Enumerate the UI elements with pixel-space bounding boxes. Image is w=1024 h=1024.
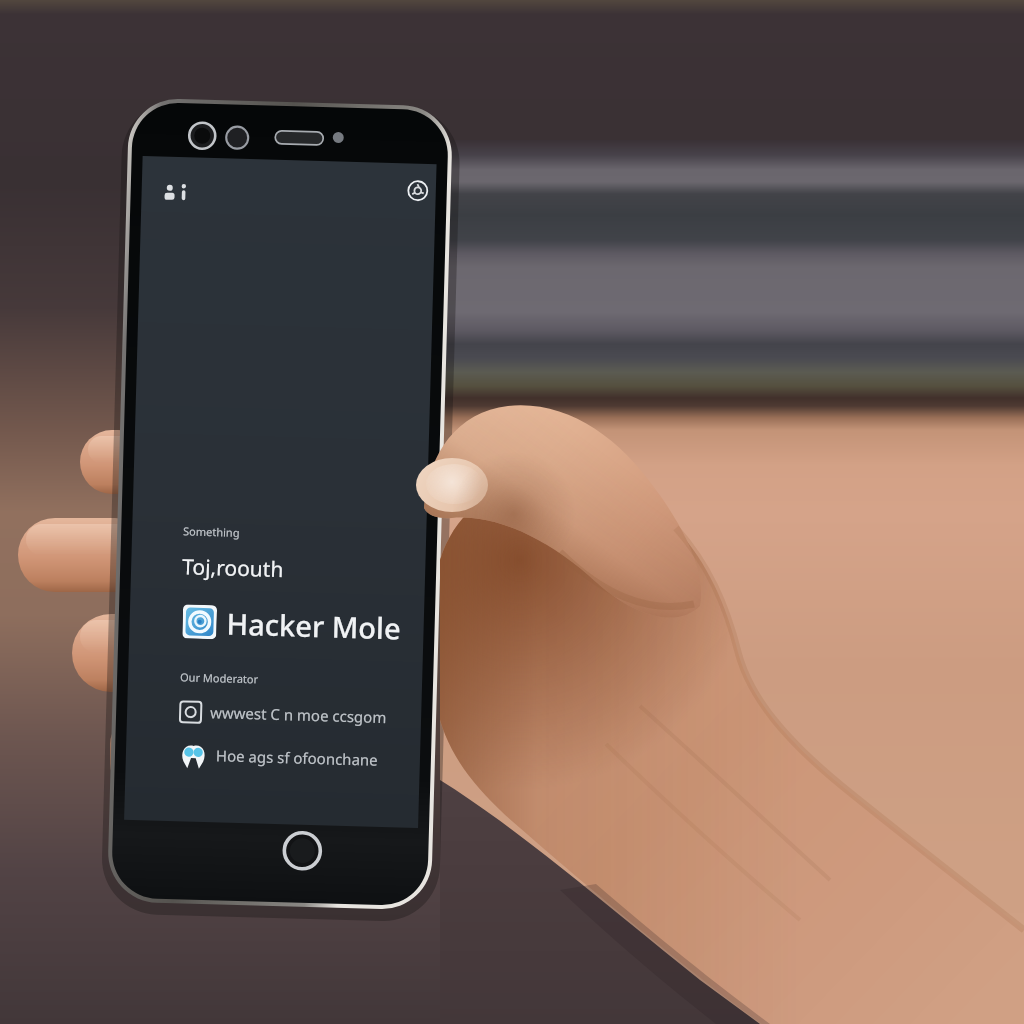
staticText: Toj,roouth (182, 552, 285, 584)
staticText: Something (183, 523, 240, 540)
staticText: Hoe ags sf ofoonchane (216, 745, 378, 770)
button[interactable]: Hoe ags sf ofoonchane (172, 731, 399, 777)
button[interactable]: Settings (405, 178, 430, 203)
staticText: Our Moderator (180, 669, 259, 686)
staticText: Hacker Mole (226, 604, 402, 647)
button[interactable]: wwwest C n moe ccsgom (174, 691, 403, 731)
staticText: wwwest C n moe ccsgom (210, 702, 387, 727)
button[interactable]: Hacker Mole (176, 595, 409, 648)
